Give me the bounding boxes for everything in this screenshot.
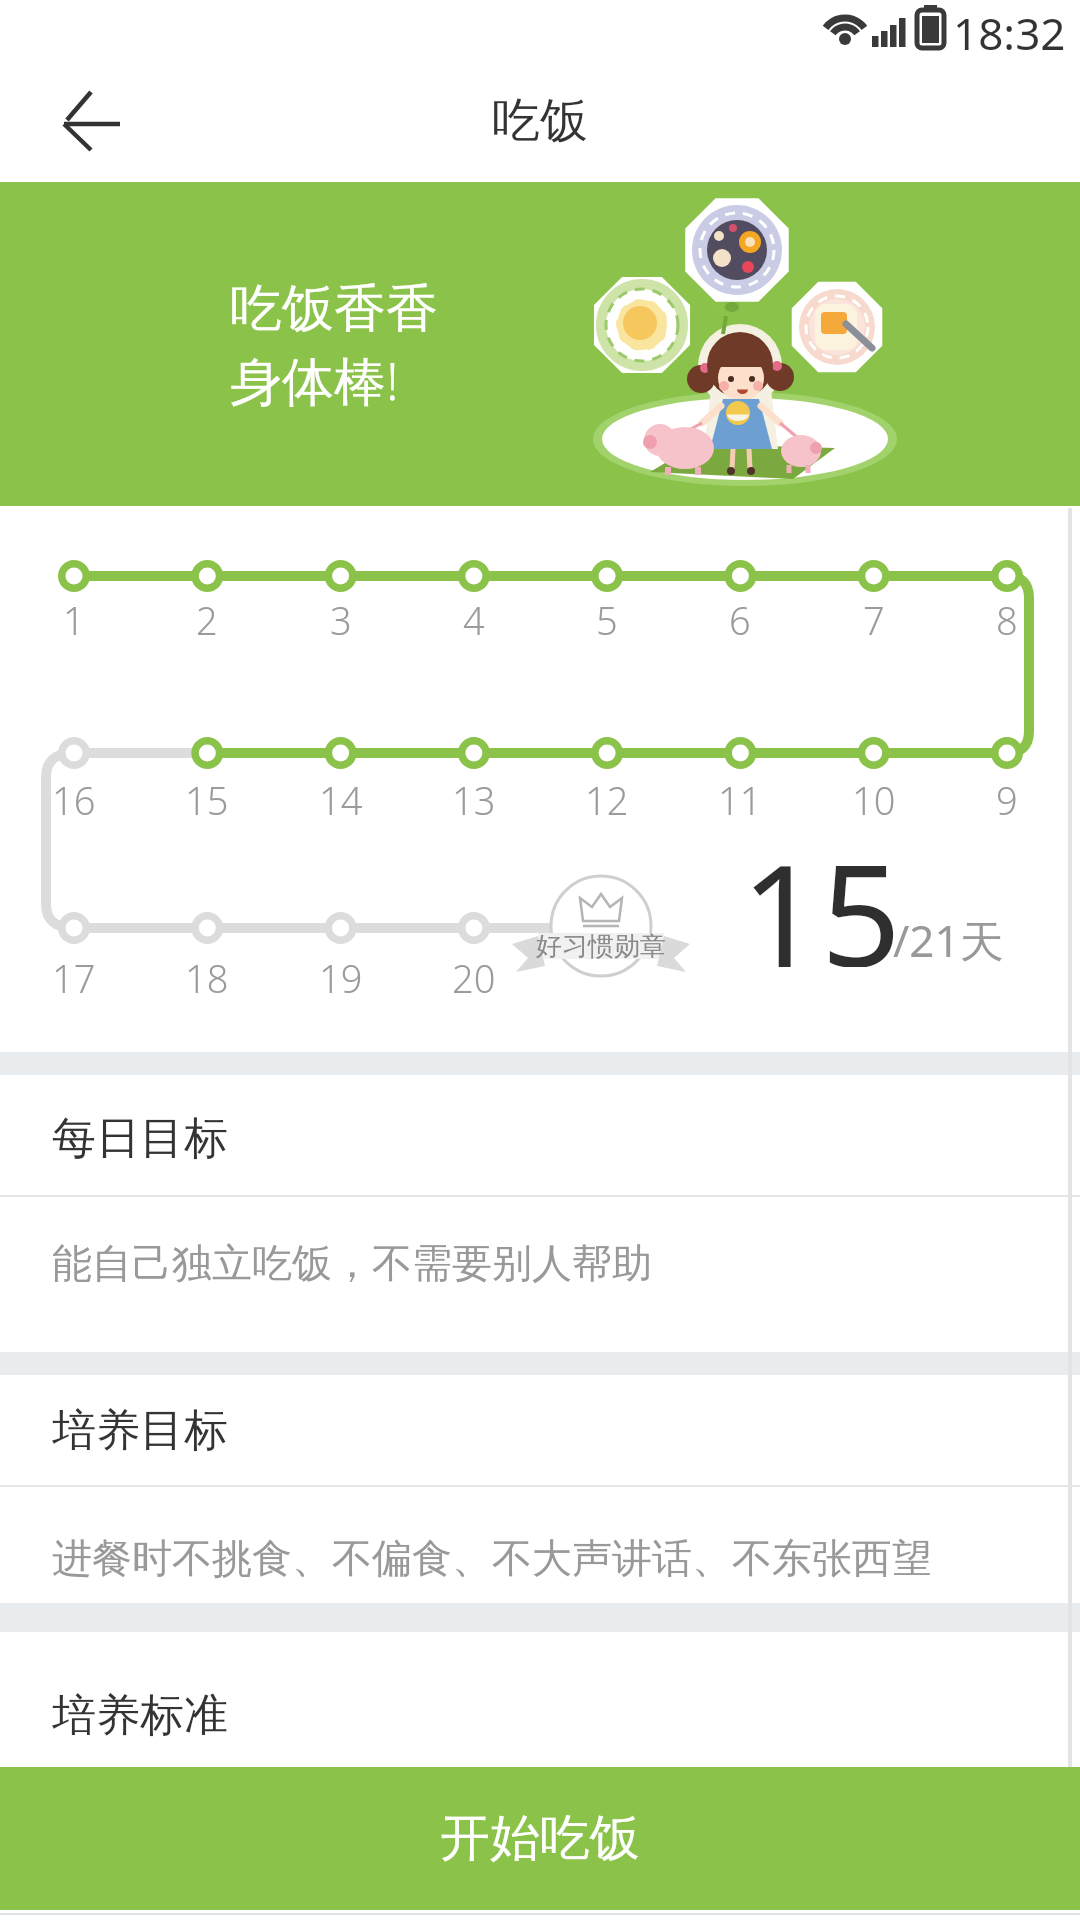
staticText: 17 — [52, 952, 96, 1004]
staticText: 1 — [63, 594, 85, 646]
staticText: 能自己独立吃饭，不需要别人帮助 — [52, 1238, 652, 1288]
staticText: 2 — [196, 594, 218, 646]
staticText: 3 — [330, 594, 352, 646]
staticText: 进餐时不挑食、不偏食、不大声讲话、不东张西望 — [52, 1533, 932, 1583]
staticText: 15 — [185, 774, 229, 826]
staticText: 培养目标 — [52, 1403, 228, 1458]
staticText: 开始吃饭 — [440, 1807, 640, 1870]
staticText: 6 — [729, 594, 751, 646]
staticText: 16 — [52, 774, 96, 826]
staticText: 10 — [852, 774, 896, 826]
staticText: 每日目标 — [52, 1111, 228, 1166]
staticText: 4 — [463, 594, 485, 646]
staticText: 培养标准 — [52, 1688, 228, 1743]
staticText: 9 — [996, 774, 1018, 826]
staticText: 吃饭香香 — [230, 276, 438, 342]
staticText: 14 — [319, 774, 363, 826]
staticText: 7 — [863, 594, 885, 646]
staticText: 20 — [452, 952, 496, 1004]
staticText: 11 — [718, 774, 762, 826]
staticText: 5 — [596, 594, 618, 646]
staticText: 18:32 — [953, 3, 1066, 63]
staticText: 吃饭 — [492, 91, 588, 151]
staticText: 19 — [319, 952, 363, 1004]
staticText: /21天 — [893, 910, 1004, 970]
button[interactable] — [0, 60, 140, 182]
staticText: 15 — [741, 817, 902, 967]
staticText: 13 — [452, 774, 496, 826]
staticText: 12 — [585, 774, 629, 826]
staticText: 身体棒! — [230, 344, 399, 415]
staticText: 好习惯勋章 — [536, 930, 666, 963]
staticText: 18 — [185, 952, 229, 1004]
button[interactable]: 开始吃饭 — [0, 1767, 1080, 1910]
staticText: 8 — [996, 594, 1018, 646]
